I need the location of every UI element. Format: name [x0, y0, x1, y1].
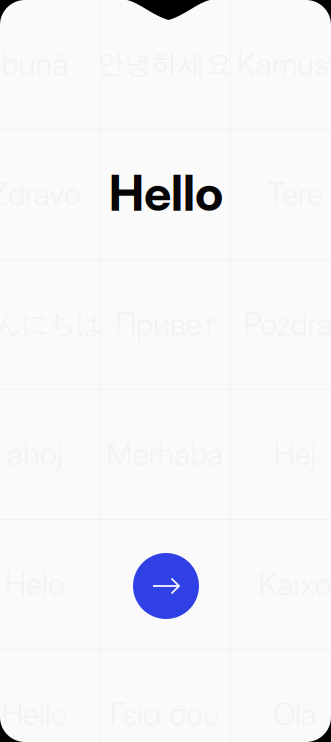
button[interactable]: Continue — [133, 553, 199, 619]
staticText: Hello — [109, 164, 223, 222]
staticText: Hello — [2, 695, 68, 732]
